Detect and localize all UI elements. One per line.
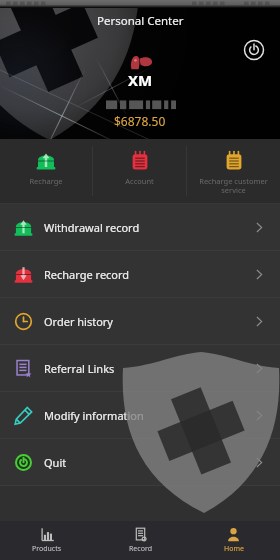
button[interactable]: Logout [243, 39, 265, 61]
button[interactable]: Order history [0, 298, 280, 344]
button[interactable]: Modify information [0, 392, 280, 438]
staticText: Account [125, 176, 154, 186]
staticText: Referral Links [44, 361, 115, 376]
button[interactable]: Recharge [0, 139, 92, 186]
staticText: Withdrawal record [44, 220, 140, 235]
staticText: Record [129, 544, 152, 554]
staticText: Modify information [44, 408, 144, 423]
staticText: Products [32, 544, 62, 554]
staticText: XM [128, 70, 153, 90]
staticText: Personal Center [97, 13, 184, 29]
staticText: Home [224, 544, 244, 554]
button[interactable]: Recharge record [0, 251, 280, 297]
button[interactable]: Products [0, 521, 94, 560]
staticText: Quit [44, 455, 67, 470]
button[interactable]: Home [187, 521, 280, 560]
staticText: Order history [44, 314, 113, 329]
button[interactable]: Quit [0, 439, 280, 485]
staticText: Recharge customer service [199, 176, 268, 195]
button[interactable]: Referral Links [0, 345, 280, 391]
staticText: $6878.50 [114, 113, 166, 129]
staticText: Recharge [29, 176, 63, 186]
button[interactable]: Recharge customer service [187, 139, 280, 195]
button[interactable]: Withdrawal record [0, 204, 280, 250]
button[interactable]: Record [94, 521, 187, 560]
button[interactable]: Account [93, 139, 186, 186]
staticText: Recharge record [44, 267, 130, 282]
